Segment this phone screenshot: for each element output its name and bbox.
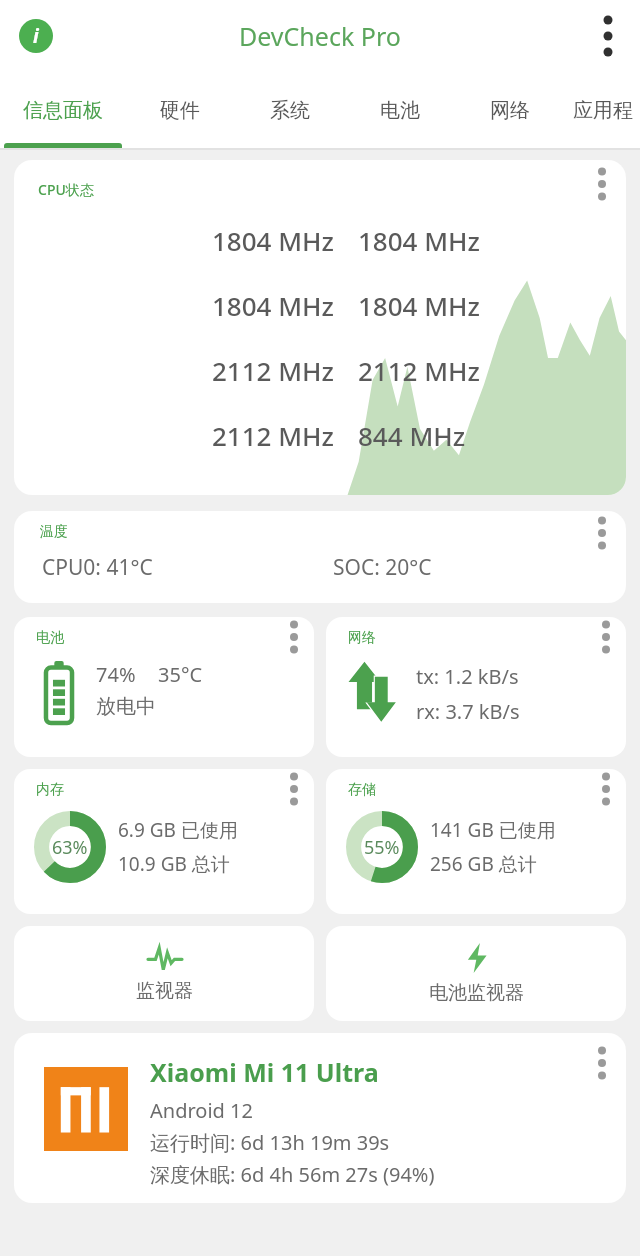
button[interactable]: More options bbox=[14, 1033, 626, 1203]
staticText: 2112 MHz bbox=[212, 418, 334, 453]
staticText: 1804 MHz bbox=[358, 288, 480, 323]
staticText: 256 GB 总计 bbox=[430, 851, 537, 877]
button[interactable]: More options bbox=[584, 166, 620, 202]
staticText: 2112 MHz bbox=[358, 353, 480, 388]
button[interactable]: 电池 bbox=[345, 72, 455, 148]
staticText: i bbox=[33, 23, 39, 49]
staticText: 放电中 bbox=[96, 694, 156, 719]
staticText: 信息面板 bbox=[23, 98, 103, 123]
staticText: 温度 bbox=[40, 523, 68, 541]
button[interactable]: 网络 bbox=[326, 617, 626, 757]
staticText: 1804 MHz bbox=[212, 288, 334, 323]
button[interactable]: 硬件 bbox=[125, 72, 235, 148]
button[interactable]: 网络 bbox=[455, 72, 565, 148]
staticText: 存储 bbox=[348, 781, 376, 799]
button[interactable]: More options bbox=[584, 515, 620, 551]
staticText: 运行时间: 6d 13h 19m 39s bbox=[150, 1129, 390, 1156]
staticText: 141 GB 已使用 bbox=[430, 817, 556, 843]
button[interactable]: More options bbox=[588, 619, 624, 655]
staticText: 74% bbox=[96, 661, 136, 688]
button[interactable]: 应用程 bbox=[565, 72, 640, 148]
button[interactable]: 信息面板 bbox=[0, 72, 125, 148]
button[interactable]: More options bbox=[276, 619, 312, 655]
button[interactable]: 内存 bbox=[14, 769, 314, 914]
staticText: 电池 bbox=[380, 98, 420, 123]
staticText: 6.9 GB 已使用 bbox=[118, 817, 238, 843]
staticText: Android 12 bbox=[150, 1097, 253, 1124]
button[interactable]: CPU状态 bbox=[14, 160, 626, 495]
staticText: Xiaomi Mi 11 Ultra bbox=[150, 1055, 379, 1089]
button[interactable]: 电池 bbox=[14, 617, 314, 757]
staticText: 2112 MHz bbox=[212, 353, 334, 388]
staticText: 系统 bbox=[270, 98, 310, 123]
button[interactable]: 温度 bbox=[14, 511, 626, 603]
staticText: CPU0: 41°C bbox=[42, 553, 153, 582]
button[interactable]: More options bbox=[276, 771, 312, 807]
staticText: 深度休眠: 6d 4h 56m 27s (94%) bbox=[150, 1161, 435, 1188]
staticText: tx: 1.2 kB/s bbox=[416, 663, 519, 690]
button[interactable]: 系统 bbox=[235, 72, 345, 148]
button[interactable]: 电池监视器 bbox=[326, 926, 626, 1021]
staticText: 应用程 bbox=[573, 98, 633, 123]
staticText: CPU状态 bbox=[38, 180, 94, 199]
staticText: 硬件 bbox=[160, 98, 200, 123]
button[interactable]: 存储 bbox=[326, 769, 626, 914]
button[interactable]: More options bbox=[584, 1045, 620, 1081]
button[interactable]: 监视器 bbox=[14, 926, 314, 1021]
staticText: 844 MHz bbox=[358, 418, 466, 453]
staticText: 1804 MHz bbox=[212, 223, 334, 258]
staticText: SOC: 20°C bbox=[333, 553, 432, 582]
staticText: 10.9 GB 总计 bbox=[118, 851, 230, 877]
button[interactable]: App info bbox=[10, 10, 62, 62]
button[interactable]: Menu bbox=[584, 12, 632, 60]
staticText: 内存 bbox=[36, 781, 64, 799]
staticText: DevCheck Pro bbox=[239, 19, 401, 53]
staticText: 网络 bbox=[490, 98, 530, 123]
staticText: 电池 bbox=[36, 629, 64, 647]
staticText: 1804 MHz bbox=[358, 223, 480, 258]
staticText: 电池监视器 bbox=[429, 981, 524, 1005]
staticText: 55% bbox=[364, 835, 400, 860]
staticText: 监视器 bbox=[136, 979, 193, 1003]
staticText: 网络 bbox=[348, 629, 376, 647]
button[interactable]: More options bbox=[588, 771, 624, 807]
staticText: 35°C bbox=[158, 661, 203, 688]
staticText: rx: 3.7 kB/s bbox=[416, 698, 520, 725]
staticText: 63% bbox=[52, 835, 88, 860]
